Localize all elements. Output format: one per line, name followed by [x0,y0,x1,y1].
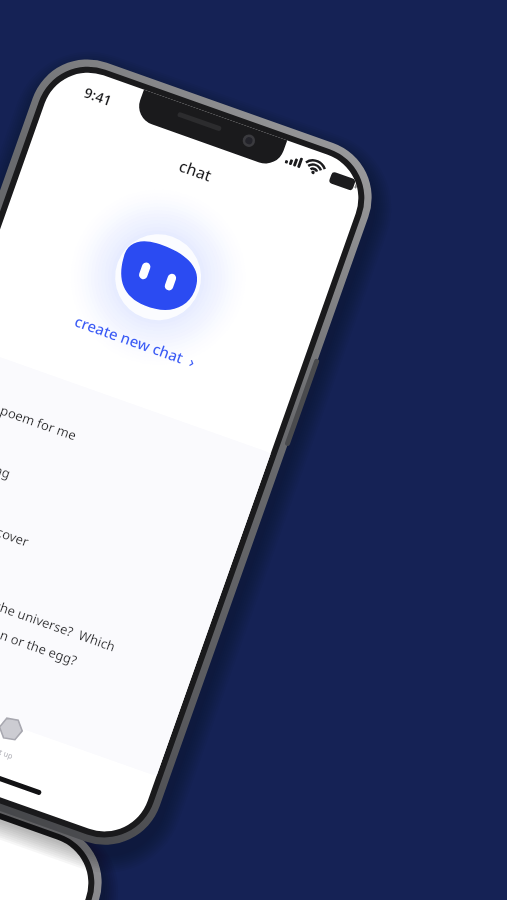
button[interactable]: chat app phone mockup [0,0,507,900]
